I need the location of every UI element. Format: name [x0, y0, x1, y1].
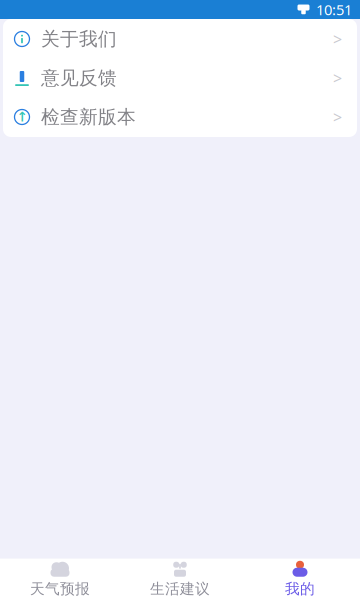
staticText: > — [333, 28, 342, 50]
button[interactable]: 关于我们 — [3, 19, 357, 58]
staticText: > — [333, 106, 342, 128]
button[interactable]: 我的 — [240, 558, 360, 600]
staticText: 我的 — [285, 580, 315, 598]
button[interactable]: 意见反馈 — [3, 58, 357, 97]
button[interactable]: 生活建议 — [120, 558, 240, 600]
staticText: ↑ — [16, 109, 27, 124]
staticText: 生活建议 — [150, 580, 210, 598]
staticText: 检查新版本 — [41, 105, 136, 128]
button[interactable]: ↑ — [3, 97, 357, 136]
staticText: 10:51 — [316, 0, 352, 19]
staticText: 意见反馈 — [41, 66, 117, 89]
staticText: 天气预报 — [30, 580, 90, 598]
staticText: 关于我们 — [41, 27, 117, 50]
staticText: > — [333, 67, 342, 89]
button[interactable]: 天气预报 — [0, 558, 120, 600]
